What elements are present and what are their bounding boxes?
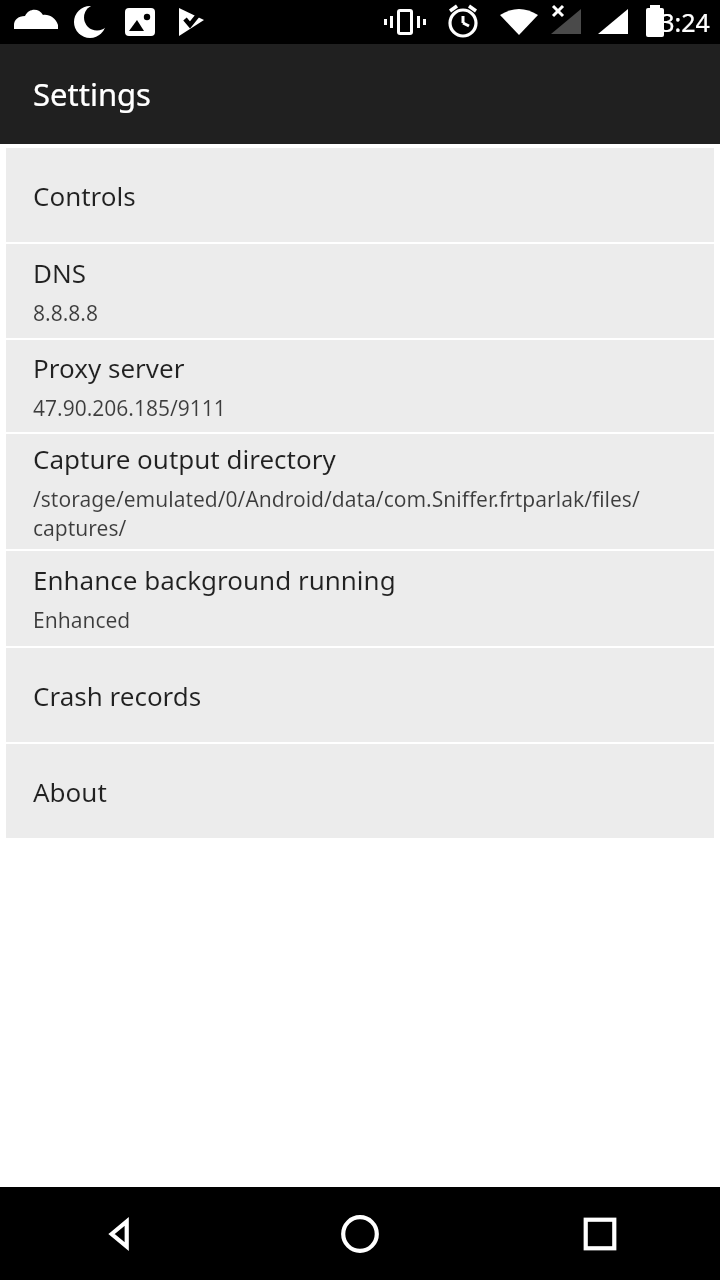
button[interactable]: Crash records xyxy=(6,648,714,742)
staticText: 8.8.8.8 xyxy=(33,299,98,328)
button[interactable]: Home xyxy=(240,1187,480,1280)
staticText: Proxy server xyxy=(33,350,185,385)
staticText: /storage/emulated/0/Android/data/com.Sni… xyxy=(33,485,696,543)
button[interactable]: Capture output directory xyxy=(6,434,714,549)
button[interactable]: DNS xyxy=(6,244,714,338)
button[interactable]: Enhance background running xyxy=(6,551,714,646)
staticText: 23:24 xyxy=(646,5,710,39)
staticText: Controls xyxy=(33,178,136,213)
button[interactable]: Back xyxy=(0,1187,240,1280)
staticText: DNS xyxy=(33,255,87,290)
staticText: About xyxy=(33,774,107,809)
button[interactable]: Recents xyxy=(480,1187,720,1280)
staticText: Capture output directory xyxy=(33,441,336,476)
staticText: Crash records xyxy=(33,678,202,713)
staticText: Enhance background running xyxy=(33,562,396,597)
staticText: 47.90.206.185/9111 xyxy=(33,394,226,423)
button[interactable]: Proxy server xyxy=(6,340,714,432)
staticText: Settings xyxy=(33,73,151,115)
staticText: Enhanced xyxy=(33,606,131,635)
button[interactable]: Controls xyxy=(6,148,714,242)
button[interactable]: About xyxy=(6,744,714,838)
